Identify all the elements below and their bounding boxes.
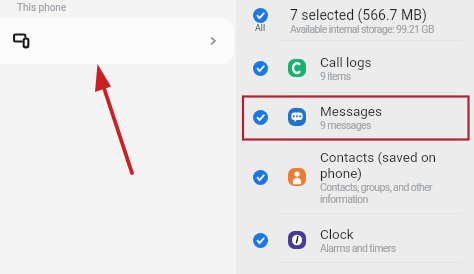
staticText: Call logs <box>320 54 372 70</box>
staticText: 9 messages <box>320 119 371 131</box>
staticText: Messages <box>320 103 382 119</box>
staticText: Contacts (saved on phone) <box>320 149 462 181</box>
staticText: Clock <box>320 226 354 242</box>
staticText: 9 items <box>320 70 351 82</box>
staticText: Available internal storage: 99.21 GB <box>290 23 434 35</box>
button[interactable]: Clock <box>236 219 474 261</box>
staticText: Contacts, groups, and other information <box>320 181 462 205</box>
button[interactable]: Messages <box>236 96 474 138</box>
staticText: All <box>255 23 266 34</box>
staticText: 7 selected (566.7 MB) <box>290 7 427 23</box>
button[interactable]: Contacts (saved on phone) <box>236 146 474 208</box>
button[interactable]: This phone <box>0 18 234 64</box>
button[interactable]: Call logs <box>236 47 474 89</box>
button[interactable]: All <box>236 2 474 40</box>
staticText: Alarms and timers <box>320 242 396 254</box>
staticText: This phone <box>17 2 67 14</box>
